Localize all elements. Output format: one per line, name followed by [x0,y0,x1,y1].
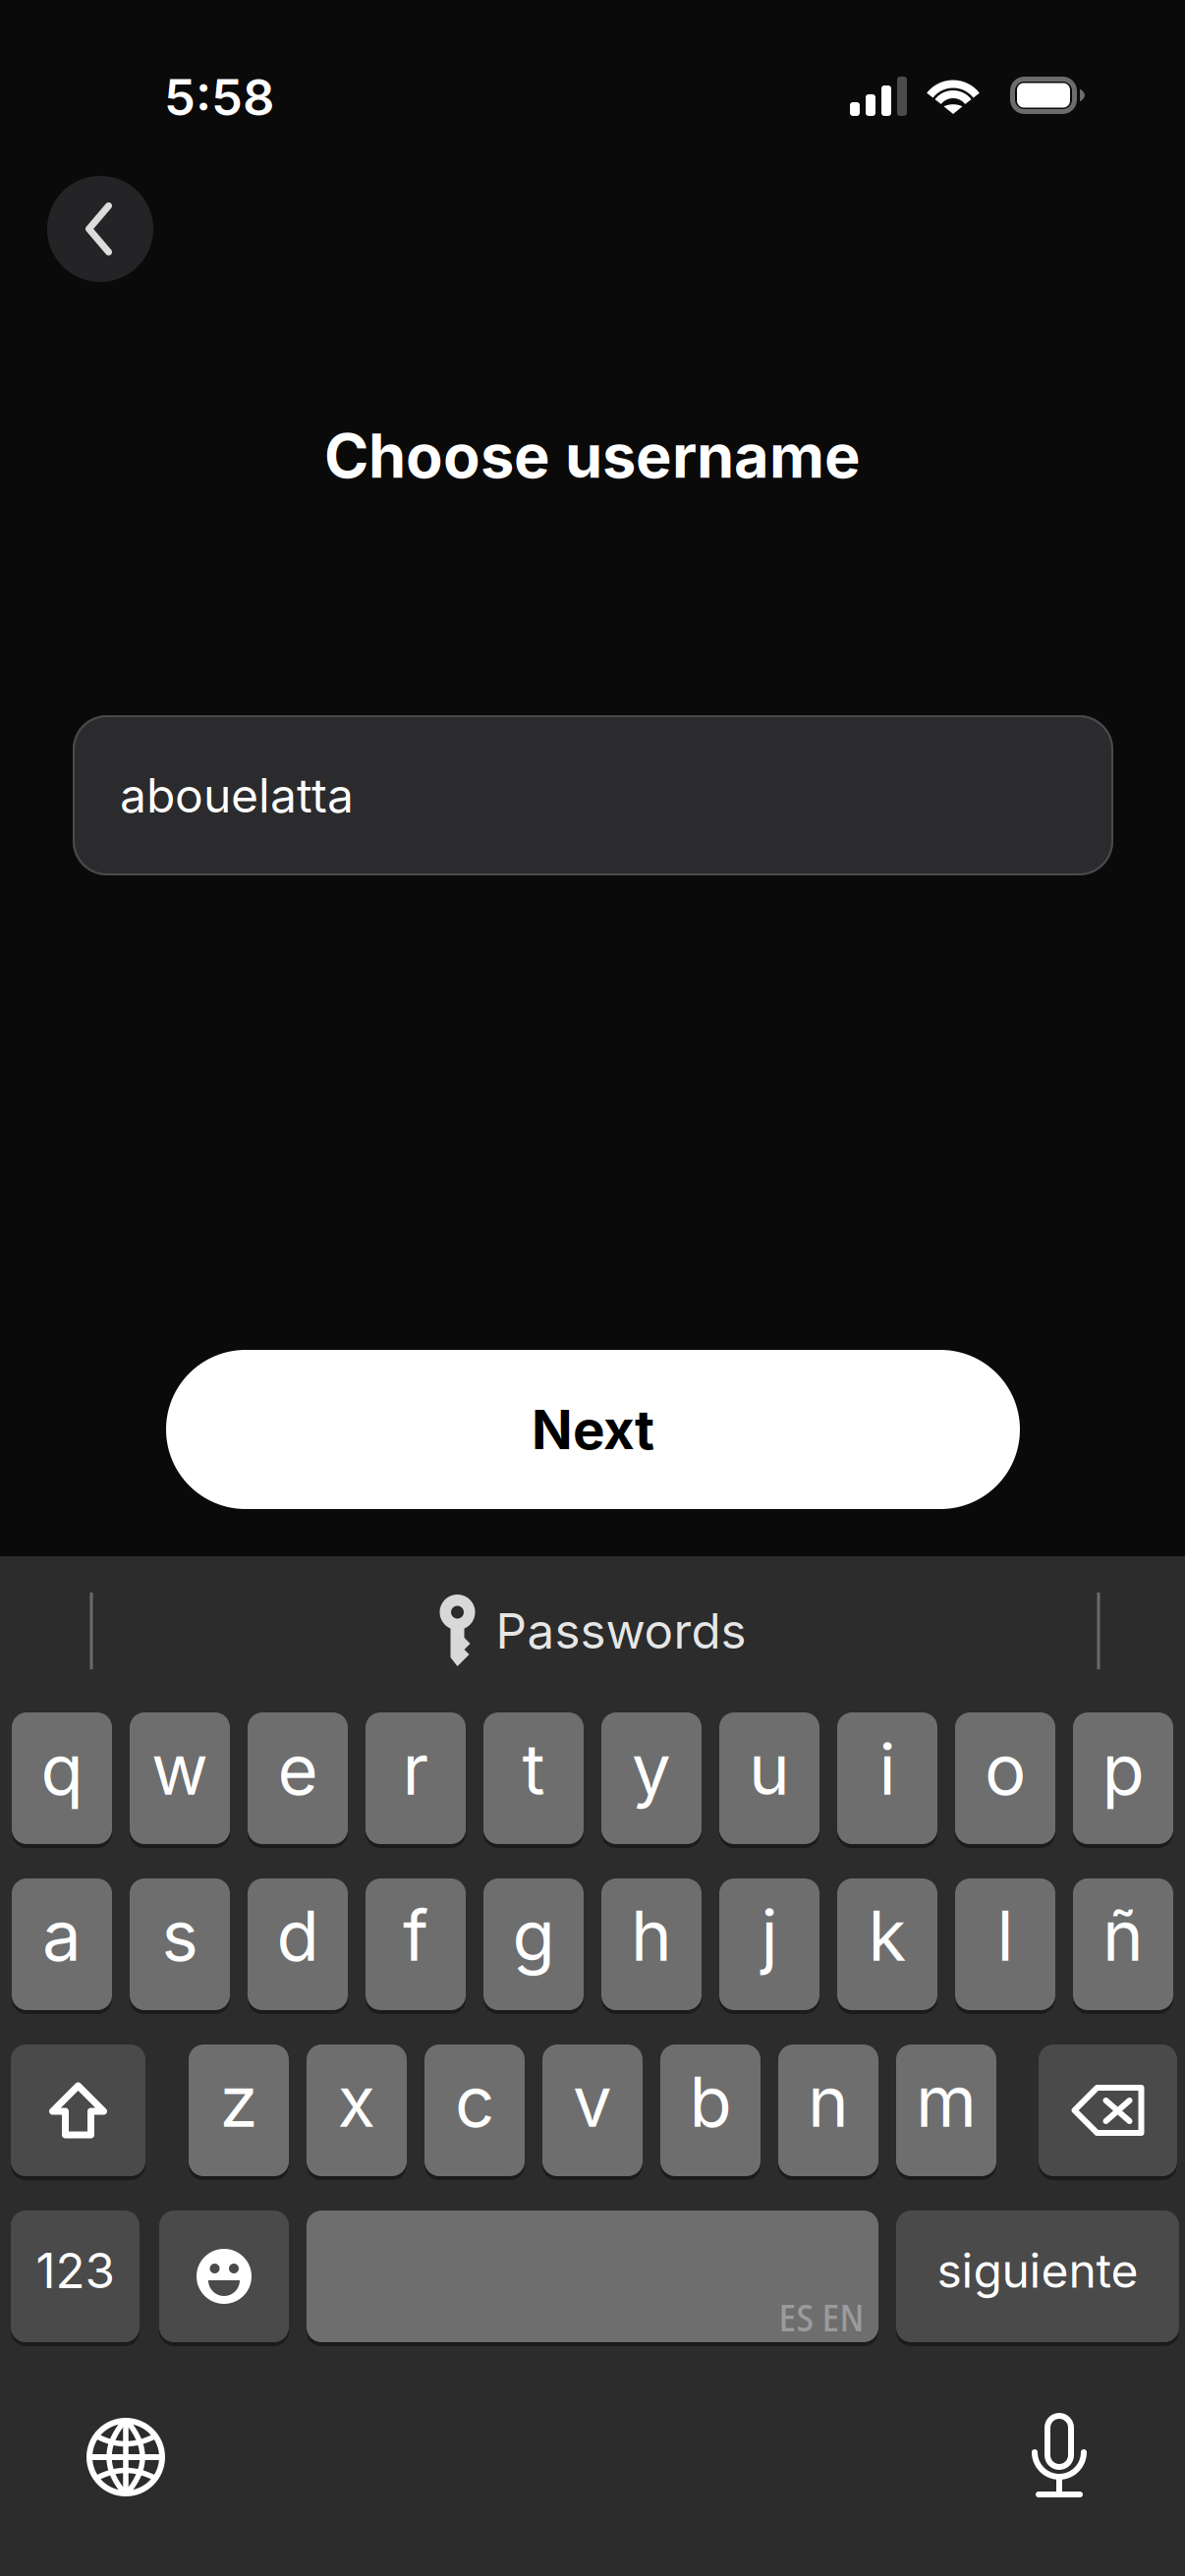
button[interactable]: y [601,1712,702,1844]
button[interactable]: q [12,1712,112,1844]
staticText: b [689,2059,732,2143]
staticText: ñ [1102,1893,1144,1977]
staticText: g [512,1893,555,1977]
staticText: 123 [36,2241,114,2300]
staticText: j [761,1893,778,1977]
button[interactable]: j [719,1878,819,2010]
staticText: z [220,2059,258,2143]
button[interactable]: ES EN [307,2211,878,2342]
button[interactable]: p [1073,1712,1173,1844]
button[interactable]: a [12,1878,112,2010]
staticText: y [632,1727,671,1811]
button[interactable] [1039,2044,1177,2176]
button[interactable]: d [248,1878,348,2010]
staticText: h [631,1893,672,1977]
staticText: r [402,1727,429,1811]
button[interactable]: 123 [11,2211,140,2342]
staticText: v [573,2059,612,2143]
button[interactable]: e [248,1712,348,1844]
button[interactable]: Passwords [439,1595,746,1667]
staticText: ES EN [779,2291,864,2343]
button[interactable]: l [955,1878,1055,2010]
button[interactable] [159,2211,289,2342]
button[interactable]: siguiente [896,2211,1179,2342]
button[interactable]: u [719,1712,819,1844]
staticText: k [868,1893,906,1977]
button[interactable]: f [366,1878,466,2010]
button[interactable]: x [307,2044,407,2176]
staticText: s [162,1893,198,1977]
staticText: d [277,1893,319,1977]
staticText: t [522,1727,545,1811]
staticText: w [151,1727,208,1811]
button[interactable]: ñ [1073,1878,1173,2010]
button[interactable] [11,2044,145,2176]
button[interactable]: Back [47,176,153,282]
staticText: q [41,1727,83,1811]
staticText: Next [532,1397,654,1462]
button[interactable]: w [130,1712,230,1844]
button[interactable]: s [130,1878,230,2010]
button[interactable]: k [837,1878,937,2010]
button[interactable]: Next keyboard [86,2418,165,2496]
staticText: Passwords [496,1602,746,1660]
button[interactable]: v [542,2044,643,2176]
staticText: siguiente [937,2242,1138,2299]
staticText: abouelatta [120,767,354,824]
staticText: u [749,1727,790,1811]
button[interactable]: m [896,2044,996,2176]
staticText: i [879,1727,896,1811]
button[interactable]: h [601,1878,702,2010]
button[interactable]: z [189,2044,289,2176]
staticText: e [278,1727,318,1811]
staticText: m [916,2059,977,2143]
staticText: c [455,2059,494,2143]
button[interactable]: Next [166,1350,1020,1509]
button[interactable]: abouelatta [73,715,1113,875]
button[interactable]: Dictation [1032,2413,1087,2497]
staticText: 5:58 [164,67,274,127]
staticText: x [338,2059,376,2143]
button[interactable]: b [660,2044,761,2176]
button[interactable]: r [366,1712,466,1844]
staticText: l [997,1893,1014,1977]
button[interactable]: g [483,1878,584,2010]
staticText: o [985,1727,1026,1811]
staticText: p [1102,1727,1144,1811]
staticText: a [42,1893,82,1977]
staticText: n [808,2059,849,2143]
button[interactable]: i [837,1712,937,1844]
staticText: Choose username [324,419,861,492]
button[interactable]: n [778,2044,878,2176]
button[interactable]: o [955,1712,1055,1844]
button[interactable]: c [424,2044,525,2176]
staticText: f [403,1893,428,1977]
button[interactable]: t [483,1712,584,1844]
